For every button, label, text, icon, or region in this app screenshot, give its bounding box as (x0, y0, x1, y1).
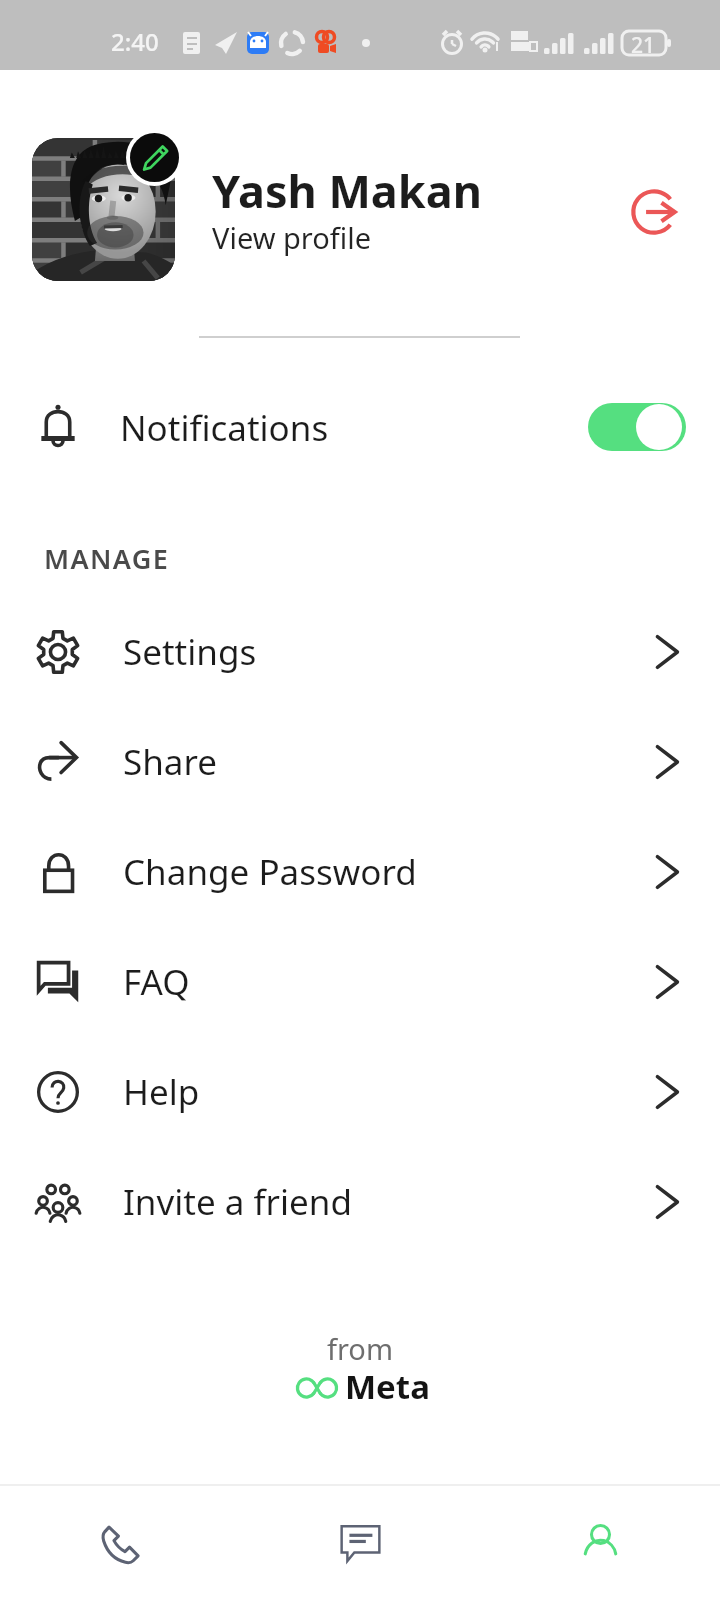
staticText: 2:40 (111, 25, 159, 58)
button[interactable]: Yash Makan (212, 160, 502, 260)
staticText: Meta (345, 1364, 430, 1409)
button[interactable]: Notifications toggle (588, 403, 686, 451)
button[interactable]: Chats (240, 1486, 480, 1600)
button[interactable]: Log out (632, 190, 676, 234)
button[interactable]: Profile photo (32, 138, 175, 281)
staticText: Help (123, 1068, 200, 1116)
button[interactable]: FAQ (0, 927, 720, 1037)
button[interactable]: Notifications (0, 373, 720, 483)
staticText: FAQ (123, 958, 190, 1006)
button[interactable]: Help (0, 1037, 720, 1147)
button[interactable]: Invite a friend (0, 1147, 720, 1257)
button[interactable]: Share (0, 707, 720, 817)
staticText: View profile (212, 218, 372, 257)
button[interactable]: Edit profile photo (126, 129, 183, 186)
staticText: MANAGE (44, 540, 170, 577)
staticText: Change Password (123, 848, 417, 896)
staticText: Settings (123, 628, 257, 676)
button[interactable]: Settings (0, 597, 720, 707)
staticText: Notifications (120, 404, 329, 452)
staticText: 21 (631, 31, 656, 60)
staticText: Yash Makan (212, 160, 482, 221)
button[interactable]: Change Password (0, 817, 720, 927)
staticText: Invite a friend (123, 1178, 352, 1226)
button[interactable]: Profile (480, 1486, 720, 1600)
button[interactable]: Calls (0, 1486, 240, 1600)
staticText: Share (123, 738, 217, 786)
staticText: from (327, 1329, 394, 1368)
